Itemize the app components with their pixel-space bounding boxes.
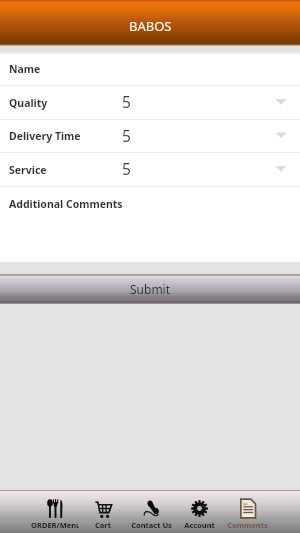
staticText: 5 xyxy=(122,158,131,179)
staticText: BABOS xyxy=(129,17,172,35)
staticText: ORDER/Menu xyxy=(31,520,79,530)
button[interactable]: Comments xyxy=(223,491,271,533)
staticText: 5 xyxy=(122,125,131,146)
staticText: Service xyxy=(9,163,47,177)
button[interactable]: Service xyxy=(0,153,300,186)
button[interactable]: Name xyxy=(0,52,300,85)
staticText: Contact Us xyxy=(131,520,172,530)
staticText: Account xyxy=(184,520,215,530)
staticText: Name xyxy=(9,62,41,76)
button[interactable]: Cart xyxy=(79,491,127,533)
staticText: Delivery Time xyxy=(9,129,81,143)
button[interactable]: Account xyxy=(175,491,223,533)
staticText: Cart xyxy=(95,520,111,530)
staticText: Comments xyxy=(227,520,268,530)
button[interactable]: Submit xyxy=(0,274,300,304)
staticText: Submit xyxy=(130,281,171,297)
button[interactable]: Contact Us xyxy=(127,491,175,533)
staticText: Additional Comments xyxy=(9,197,123,211)
button[interactable]: Quality xyxy=(0,86,300,119)
staticText: Quality xyxy=(9,96,48,110)
button[interactable]: ORDER/Menu xyxy=(31,491,79,533)
button[interactable]: Additional Comments xyxy=(0,187,300,220)
button[interactable]: Delivery Time xyxy=(0,120,300,152)
staticText: 5 xyxy=(122,91,131,112)
